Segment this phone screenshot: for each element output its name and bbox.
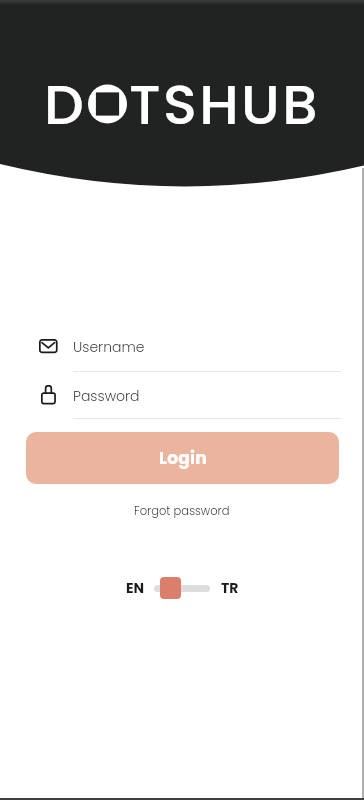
staticText: EN bbox=[126, 578, 145, 598]
staticText: Username bbox=[73, 337, 145, 357]
staticText: TSHUB bbox=[129, 65, 320, 143]
staticText: Password bbox=[73, 386, 140, 406]
staticText: D bbox=[44, 65, 84, 143]
button[interactable]: Language toggle bbox=[154, 576, 210, 600]
button[interactable]: Password bbox=[33, 380, 341, 420]
button[interactable]: Username bbox=[33, 331, 341, 373]
staticText: Login bbox=[159, 446, 207, 470]
staticText: TR bbox=[221, 578, 239, 598]
button[interactable]: Login bbox=[26, 432, 339, 484]
button[interactable]: Forgot password bbox=[128, 500, 236, 522]
staticText: Forgot password bbox=[134, 503, 230, 519]
